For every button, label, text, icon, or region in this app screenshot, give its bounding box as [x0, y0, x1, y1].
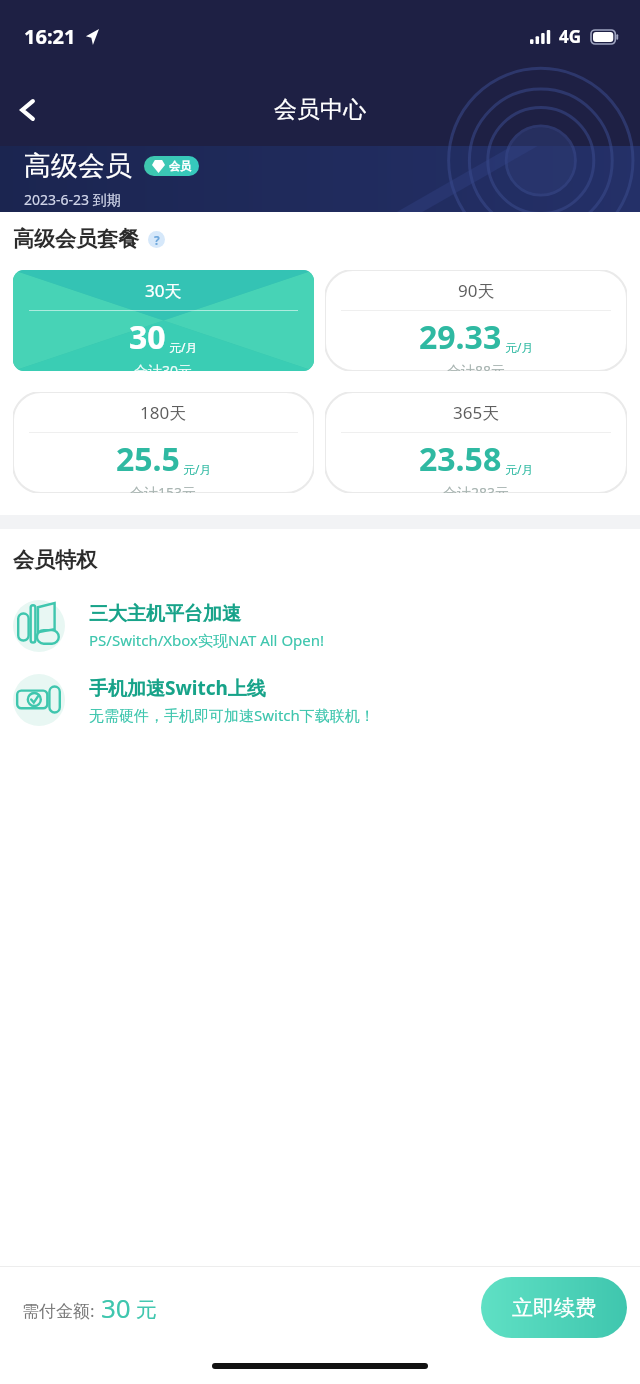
staticText: 手机加速Switch上线 — [89, 675, 266, 701]
button[interactable]: 手机加速Switch上线 — [13, 674, 640, 726]
staticText: 90天 — [458, 279, 495, 302]
staticText: 4G — [559, 25, 582, 48]
staticText: ? — [154, 232, 160, 248]
staticText: 30 — [101, 1290, 131, 1325]
staticText: 高级会员 — [24, 149, 132, 183]
staticText: 25.5 — [116, 437, 180, 481]
staticText: 立即续费 — [512, 1295, 596, 1321]
staticText: 元/月 — [169, 339, 198, 355]
staticText: 无需硬件，手机即可加速Switch下载联机！ — [89, 705, 375, 725]
button[interactable]: Help — [148, 231, 165, 248]
staticText: 365天 — [453, 401, 500, 424]
staticText: 180天 — [140, 401, 187, 424]
staticText: 元/月 — [183, 461, 212, 477]
staticText: 高级会员套餐 — [13, 226, 139, 252]
staticText: 会员特权 — [13, 547, 97, 573]
staticText: 合计283元 — [443, 483, 510, 493]
button[interactable]: 90天 — [325, 270, 627, 371]
button[interactable]: 三大主机平台加速 — [13, 600, 640, 652]
staticText: 会员中心 — [274, 95, 366, 124]
staticText: 合计88元 — [447, 361, 506, 371]
staticText: 需付金额: — [22, 1299, 95, 1322]
staticText: 23.58 — [419, 437, 502, 481]
button[interactable]: 180天 — [13, 392, 314, 493]
staticText: 30 — [129, 315, 166, 359]
staticText: 元/月 — [505, 461, 534, 477]
button[interactable]: 365天 — [325, 392, 627, 493]
staticText: 合计153元 — [130, 483, 197, 493]
staticText: 会员 — [169, 159, 191, 173]
staticText: 30天 — [145, 279, 182, 302]
staticText: PS/Switch/Xbox实现NAT All Open! — [89, 630, 325, 650]
staticText: 合计30元 — [134, 361, 193, 371]
button[interactable]: 立即续费 — [481, 1277, 627, 1338]
staticText: 16:21 — [24, 23, 76, 50]
staticText: 元 — [136, 1297, 157, 1323]
staticText: 29.33 — [419, 315, 502, 359]
staticText: 三大主机平台加速 — [89, 602, 241, 626]
button[interactable]: Back — [0, 82, 56, 138]
button[interactable]: 30天 — [13, 270, 314, 371]
staticText: 2023-6-23 到期 — [24, 190, 121, 209]
staticText: 元/月 — [505, 339, 534, 355]
